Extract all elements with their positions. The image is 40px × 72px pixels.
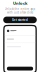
staticText: Unlock the entire app (4, 7, 35, 11)
staticText: with just a few clicks (7, 11, 33, 14)
staticText: Unlock (13, 1, 27, 6)
button[interactable]: Get started (3, 17, 37, 23)
staticText: Get started (12, 18, 28, 22)
